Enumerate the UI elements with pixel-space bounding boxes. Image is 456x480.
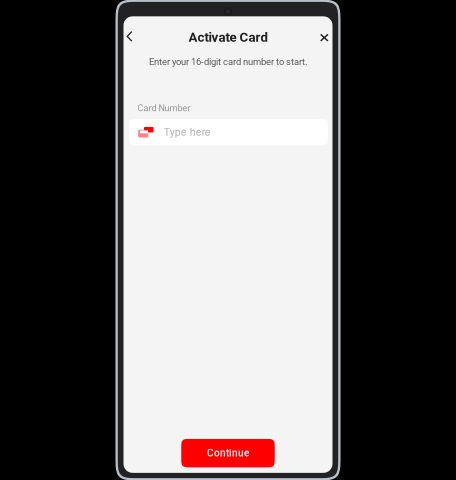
staticText: Enter your 16-digit card number to start… <box>149 56 307 67</box>
button[interactable]: Type here <box>129 119 328 145</box>
staticText: Card Number <box>137 103 190 113</box>
staticText: Activate Card <box>188 30 267 45</box>
button[interactable]: Continue <box>181 439 275 467</box>
button[interactable]: Back <box>123 25 135 47</box>
staticText: Type here <box>164 126 211 138</box>
staticText: Continue <box>207 447 249 459</box>
button[interactable]: Close <box>317 25 332 47</box>
